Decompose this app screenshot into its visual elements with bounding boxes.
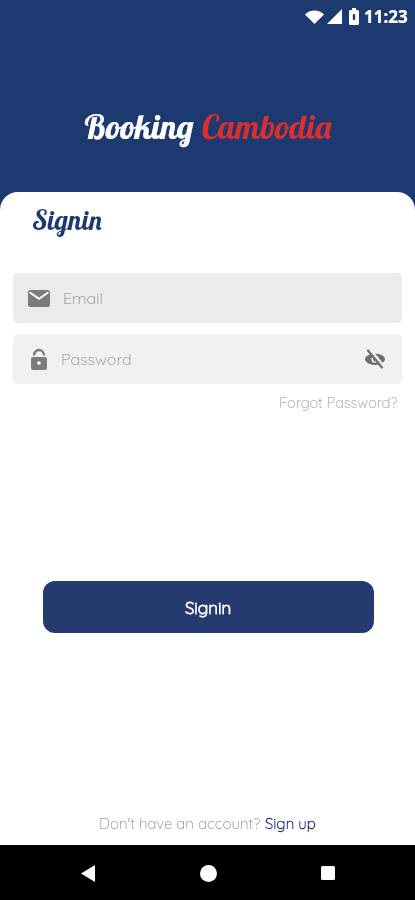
button[interactable]: [68, 853, 108, 893]
button[interactable]: Signin: [43, 581, 374, 633]
staticText: Password: [61, 349, 132, 369]
button[interactable]: Email: [13, 273, 402, 323]
staticText: Signin: [185, 597, 232, 618]
staticText: Email: [63, 288, 103, 308]
staticText: 11:23: [364, 5, 408, 28]
staticText: Don't have an account?: [99, 814, 265, 833]
button[interactable]: [355, 339, 395, 379]
button[interactable]: [188, 853, 228, 893]
button[interactable]: Forgot Password?: [279, 393, 398, 411]
staticText: Cambodia: [201, 106, 333, 147]
staticText: Signin: [33, 203, 103, 237]
button[interactable]: [308, 853, 348, 893]
staticText: Booking: [83, 106, 201, 147]
button[interactable]: Sign up: [265, 814, 316, 833]
button[interactable]: Password: [13, 334, 402, 384]
